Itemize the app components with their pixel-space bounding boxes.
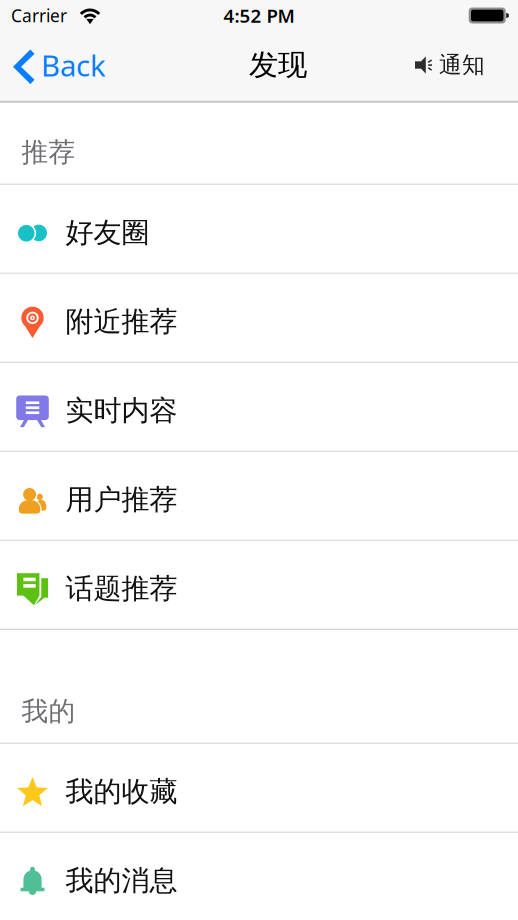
staticText: 用户推荐 xyxy=(65,483,177,517)
staticText: 4:52 PM xyxy=(223,3,294,28)
staticText: 实时内容 xyxy=(65,394,177,428)
button[interactable]: Back xyxy=(0,28,118,101)
staticText: Carrier xyxy=(11,4,67,27)
staticText: 好友圈 xyxy=(65,216,149,250)
staticText: Back xyxy=(41,45,106,84)
button[interactable]: 用户推荐 xyxy=(0,452,518,541)
staticText: 推荐 xyxy=(21,136,75,169)
staticText: 我的 xyxy=(21,695,75,728)
button[interactable]: 话题推荐 xyxy=(0,541,518,630)
button[interactable]: 通知 xyxy=(403,28,518,101)
button[interactable]: 附近推荐 xyxy=(0,274,518,363)
button[interactable]: 好友圈 xyxy=(0,185,518,274)
staticText: 发现 xyxy=(249,47,307,83)
staticText: 通知 xyxy=(439,51,485,79)
button[interactable]: 我的消息 xyxy=(0,833,518,920)
staticText: 附近推荐 xyxy=(65,305,177,339)
button[interactable]: 实时内容 xyxy=(0,363,518,452)
staticText: 话题推荐 xyxy=(65,572,177,606)
staticText: 我的收藏 xyxy=(65,775,177,809)
button[interactable]: 我的收藏 xyxy=(0,744,518,833)
staticText: 我的消息 xyxy=(65,864,177,898)
